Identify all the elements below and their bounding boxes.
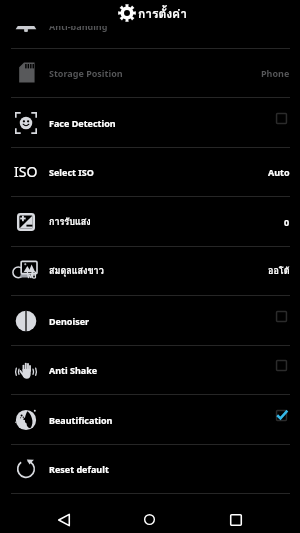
button[interactable]: Anti-banding: [0, 0, 300, 49]
button[interactable]: การรับแสง: [0, 197, 300, 247]
button[interactable]: สมดุลแสงขาว: [0, 246, 300, 296]
staticText: Denoiser: [49, 315, 90, 327]
button[interactable]: Face Detection: [0, 98, 300, 148]
button[interactable]: Anti Shake: [0, 345, 300, 395]
staticText: ออโต้: [268, 264, 290, 278]
staticText: การรับแสง: [49, 215, 91, 229]
staticText: การตั้งค่า: [138, 4, 187, 23]
button[interactable]: Reset default: [0, 444, 300, 494]
button[interactable]: Denoiser: [0, 296, 300, 346]
button[interactable]: ISO: [0, 147, 300, 197]
staticText: Anti-banding: [49, 20, 108, 32]
button[interactable]: Storage Position: [0, 48, 300, 98]
button[interactable]: Unchecked: [276, 312, 295, 331]
button[interactable]: Recent apps: [214, 494, 257, 533]
staticText: Beautification: [49, 414, 113, 426]
staticText: Anti Shake: [49, 364, 98, 376]
button[interactable]: Back: [42, 494, 85, 533]
staticText: Storage Position: [49, 67, 123, 79]
staticText: Reset default: [49, 463, 109, 475]
staticText: Phone: [261, 67, 290, 79]
staticText: ISO: [14, 162, 38, 181]
button[interactable]: Checked: [276, 411, 295, 430]
staticText: Select ISO: [49, 166, 94, 178]
button[interactable]: Home: [128, 494, 171, 533]
staticText: 0: [284, 216, 290, 228]
staticText: Face Detection: [49, 117, 116, 129]
button[interactable]: Unchecked: [276, 361, 295, 380]
button[interactable]: Beautification: [0, 395, 300, 445]
staticText: สมดุลแสงขาว: [49, 264, 104, 278]
staticText: Auto: [268, 166, 290, 178]
button[interactable]: Unchecked: [276, 114, 295, 133]
button[interactable]: การตั้งค่า: [118, 3, 187, 22]
